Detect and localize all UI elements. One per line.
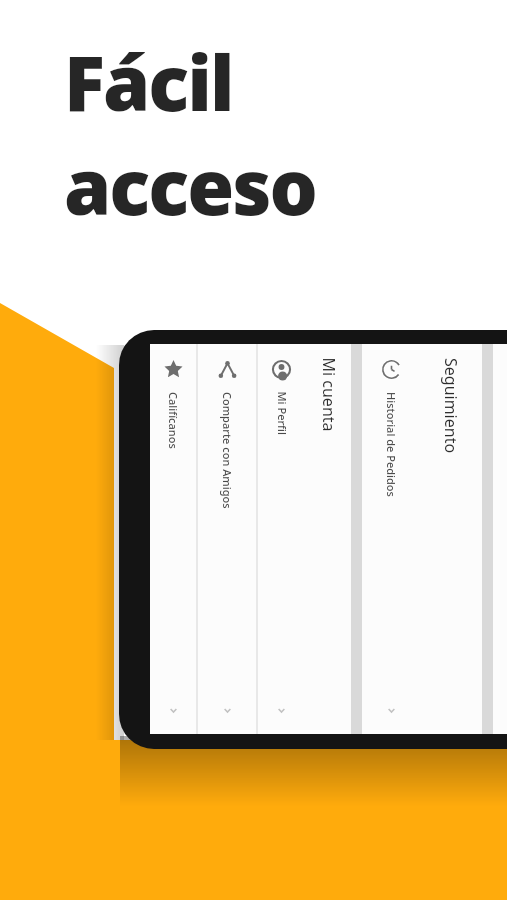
button[interactable]: Share with friends xyxy=(198,344,256,734)
staticText: acceso xyxy=(64,134,316,238)
staticText: Mi Perfil xyxy=(274,391,289,435)
staticText: Historial de Pedidos xyxy=(384,392,399,497)
button[interactable]: Rate us xyxy=(150,344,196,734)
staticText: Comparte con Amigos xyxy=(220,392,235,509)
staticText: Mi cuenta xyxy=(317,357,339,432)
staticText: Califícanos xyxy=(166,392,181,449)
button[interactable]: My profile xyxy=(258,344,305,734)
staticText: Fácil xyxy=(64,30,233,134)
button[interactable]: Order history xyxy=(362,344,420,734)
staticText: Seguimiento xyxy=(440,358,462,454)
